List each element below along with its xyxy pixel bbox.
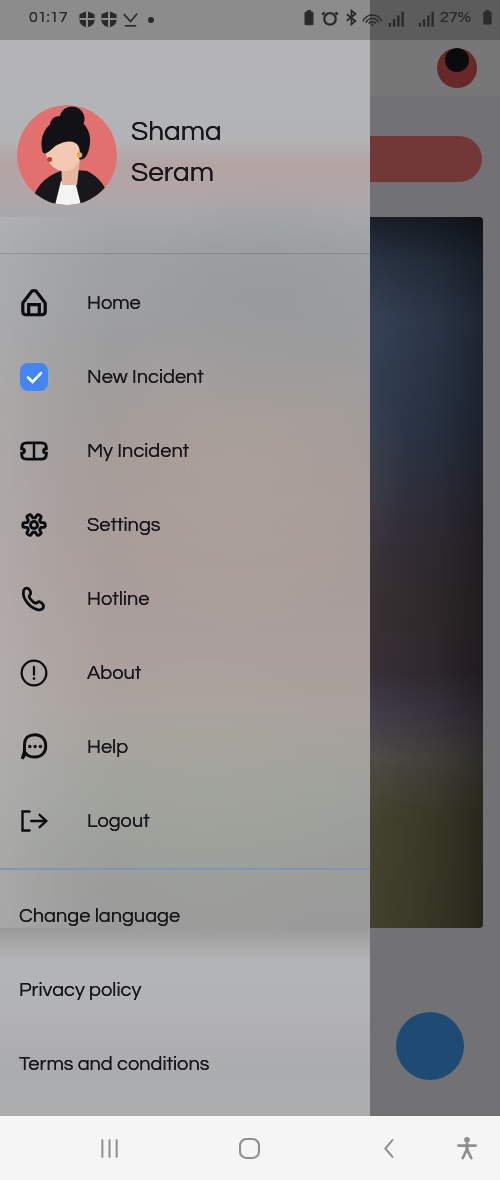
button[interactable]: Home — [225, 1116, 273, 1180]
button[interactable]: Terms and conditions — [0, 1034, 370, 1094]
staticText: Logout — [87, 811, 150, 832]
staticText: New Incident — [87, 367, 204, 388]
staticText: Seram — [131, 158, 215, 187]
staticText: Shama — [131, 117, 222, 146]
staticText: My Incident — [87, 441, 189, 462]
staticText: About — [87, 663, 142, 684]
button[interactable]: Recent apps — [85, 1116, 133, 1180]
staticText: 01:17 — [29, 9, 68, 25]
staticText: Settings — [87, 515, 161, 536]
staticText: Terms and conditions — [19, 1054, 210, 1075]
button[interactable]: Logout — [0, 784, 370, 858]
staticText: Change language — [19, 906, 181, 927]
staticText: About — [87, 663, 142, 684]
staticText: 27% — [440, 9, 472, 25]
staticText: Settings — [87, 515, 161, 536]
button[interactable]: Privacy policy — [0, 960, 370, 1020]
staticText: Privacy policy — [19, 980, 142, 1001]
staticText: My Incident — [87, 441, 189, 462]
staticText: Seram — [131, 158, 215, 187]
staticText: Help — [87, 737, 129, 758]
staticText: Hotline — [87, 589, 150, 610]
button[interactable]: Change language — [0, 886, 370, 946]
staticText: Help — [87, 737, 129, 758]
button[interactable]: Back — [365, 1116, 413, 1180]
button[interactable]: Help — [0, 710, 370, 784]
staticText: Change language — [19, 906, 181, 927]
staticText: Logout — [87, 811, 150, 832]
button[interactable]: Hotline — [0, 562, 370, 636]
staticText: Shama — [131, 117, 222, 146]
staticText: New Incident — [87, 367, 204, 388]
staticText: Shama — [131, 117, 222, 146]
staticText: 27% — [440, 9, 472, 25]
staticText: Home — [87, 293, 141, 314]
button[interactable]: About — [0, 636, 370, 710]
staticText: Hotline — [87, 589, 150, 610]
staticText: About — [87, 663, 142, 684]
button[interactable]: New Incident — [0, 340, 370, 414]
staticText: Settings — [87, 515, 161, 536]
button[interactable]: Settings — [0, 488, 370, 562]
staticText: Terms and conditions — [19, 1054, 210, 1075]
staticText: Seram — [131, 158, 215, 187]
staticText: 01:17 — [29, 9, 68, 25]
staticText: 27% — [440, 9, 472, 25]
staticText: Logout — [87, 811, 150, 832]
staticText: Hotline — [87, 589, 150, 610]
staticText: Help — [87, 737, 129, 758]
staticText: New Incident — [87, 367, 204, 388]
button[interactable]: My Incident — [0, 414, 370, 488]
button[interactable]: Accessibility — [443, 1116, 491, 1180]
staticText: Home — [87, 293, 141, 314]
staticText: Privacy policy — [19, 980, 142, 1001]
staticText: Privacy policy — [19, 980, 142, 1001]
staticText: My Incident — [87, 441, 189, 462]
staticText: 01:17 — [29, 9, 68, 25]
staticText: Terms and conditions — [19, 1054, 210, 1075]
staticText: Home — [87, 293, 141, 314]
staticText: Change language — [19, 906, 181, 927]
button[interactable]: Home — [0, 266, 370, 340]
